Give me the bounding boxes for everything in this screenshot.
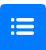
button[interactable]: Lists: [0, 0, 46, 50]
